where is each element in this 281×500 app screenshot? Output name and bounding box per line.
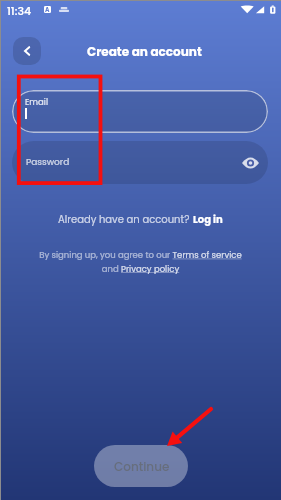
button[interactable]: Continue [94,445,188,487]
button[interactable]: Back [13,37,41,65]
staticText: Continue [114,458,170,475]
staticText: 11:34 [7,3,32,18]
button[interactable]: Email [12,90,268,133]
button[interactable]: Show password [238,151,262,175]
staticText: Create an account [87,43,202,60]
staticText: Already have an account? [58,212,193,226]
staticText: By signing up, you agree to our Terms of… [33,249,248,275]
button[interactable]: Already have an account? [58,212,223,226]
staticText: Email [25,96,49,108]
staticText: Log in [193,212,223,226]
staticText: A [45,6,50,13]
button[interactable]: Password [12,141,268,184]
staticText: Password [26,156,70,169]
